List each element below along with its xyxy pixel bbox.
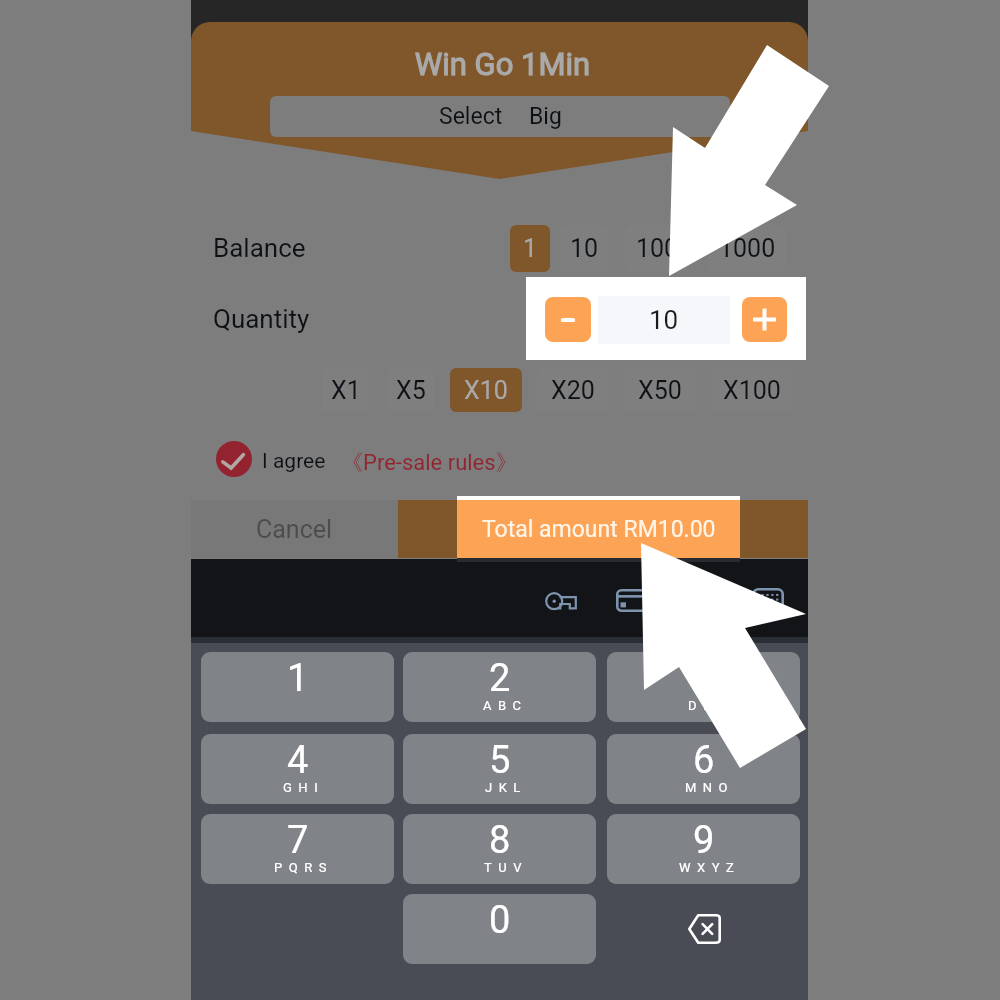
staticText: ABC (483, 698, 528, 713)
staticText: X10 (464, 376, 508, 405)
button[interactable]: 《Pre-sale rules》 (341, 449, 518, 477)
staticText: 1 (287, 656, 309, 701)
staticText: TUV (484, 860, 528, 875)
staticText: X5 (396, 376, 426, 405)
button[interactable]: X20 (537, 368, 609, 412)
staticText: 10 (649, 305, 679, 335)
button[interactable]: 0 (403, 894, 596, 964)
button[interactable]: 5 (403, 734, 596, 804)
staticText: 8 (489, 818, 511, 863)
button[interactable]: Card (602, 575, 662, 626)
staticText: X50 (638, 376, 682, 405)
staticText: WXYZ (679, 860, 741, 875)
staticText: X100 (723, 376, 781, 405)
staticText: 9 (693, 818, 715, 863)
staticText: Balance (213, 233, 306, 263)
button[interactable]: Total amount RM10.00 (457, 500, 740, 558)
staticText: MNO (685, 780, 735, 795)
staticText: X1 (331, 376, 361, 405)
button[interactable]: X100 (711, 368, 792, 412)
button[interactable]: 2 (403, 652, 596, 722)
staticText: 1000 (719, 234, 776, 263)
staticText: 10 (570, 234, 599, 263)
staticText: X20 (551, 376, 595, 405)
button[interactable]: Increase (742, 297, 787, 342)
button[interactable]: 10 (560, 225, 608, 272)
button[interactable]: X10 (450, 368, 522, 412)
staticText: 4 (287, 738, 309, 783)
staticText: JKL (485, 780, 527, 795)
button[interactable]: X50 (624, 368, 696, 412)
staticText: Select (439, 103, 503, 130)
staticText: 1 (523, 234, 538, 263)
button[interactable]: Backspace (607, 894, 800, 964)
staticText: Win Go 1Min (194, 46, 811, 82)
button[interactable]: Keyboard (738, 574, 798, 624)
button[interactable]: 3 (607, 652, 800, 722)
button[interactable]: 6 (607, 734, 800, 804)
button[interactable]: Decrease (545, 297, 591, 342)
button[interactable]: Password (531, 579, 591, 625)
staticText: Cancel (256, 515, 333, 544)
staticText: I agree (262, 449, 326, 474)
staticText: 5 (489, 738, 511, 783)
staticText: 7 (287, 818, 309, 863)
button[interactable]: 100 (625, 225, 689, 272)
staticText: 2 (489, 656, 511, 701)
staticText: 0 (489, 898, 511, 943)
staticText: PQRS (274, 860, 333, 875)
button[interactable]: Select (270, 96, 730, 137)
staticText: Total amount RM10.00 (482, 516, 716, 543)
button[interactable]: Cancel (191, 500, 398, 558)
staticText: 100 (636, 234, 679, 263)
button[interactable]: 1 (201, 652, 394, 722)
staticText: DEF (688, 698, 731, 713)
staticText: Quantity (213, 304, 310, 334)
button[interactable]: I agree (216, 441, 361, 477)
button[interactable]: Total amount RM10.00 (398, 500, 808, 558)
staticText: 6 (693, 738, 715, 783)
button[interactable]: 1 (510, 225, 550, 272)
staticText: Big (529, 103, 562, 130)
button[interactable]: 4 (201, 734, 394, 804)
button[interactable]: X5 (387, 368, 434, 412)
button[interactable]: X1 (322, 368, 369, 412)
staticText: 3 (693, 656, 715, 701)
button[interactable]: 1000 (708, 225, 786, 272)
button[interactable]: 9 (607, 814, 800, 884)
button[interactable]: 8 (403, 814, 596, 884)
staticText: Total amount RM10.00 (486, 516, 720, 543)
button[interactable]: 7 (201, 814, 394, 884)
staticText: GHI (283, 780, 325, 795)
